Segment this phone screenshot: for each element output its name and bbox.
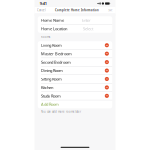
staticText: Select [83, 26, 93, 31]
staticText: 9:41 [40, 1, 47, 6]
button[interactable]: Cancel [37, 8, 46, 12]
button[interactable]: Master Bedroom [38, 50, 112, 58]
staticText: Rooms [41, 35, 50, 39]
button[interactable]: Save [108, 8, 113, 12]
button[interactable]: Second Bedroom [38, 58, 112, 66]
staticText: Living Room [41, 43, 62, 48]
staticText: Cancel [37, 8, 46, 12]
staticText: Home Location [41, 26, 67, 31]
staticText: Dining Room [41, 68, 63, 73]
staticText: Master Bedroom [41, 51, 72, 56]
staticText: Study Room [41, 93, 61, 98]
button[interactable]: Living Room [38, 41, 112, 50]
staticText: Sitting Room [41, 76, 62, 82]
staticText: Enter [82, 18, 91, 23]
button[interactable]: Study Room [38, 92, 112, 100]
staticText: Home Name [41, 18, 64, 23]
staticText: Complete Home Information [55, 8, 99, 12]
button[interactable]: Sitting Room [38, 75, 112, 83]
button[interactable]: Kitchen [38, 83, 112, 92]
staticText: Add Room [41, 102, 59, 107]
button[interactable]: Home Location [38, 25, 112, 33]
staticText: Second Bedroom [41, 59, 71, 65]
button[interactable]: Dining Room [38, 66, 112, 75]
button[interactable]: Home Name [38, 16, 112, 25]
staticText: Kitchen [41, 85, 53, 90]
button[interactable]: Add Room [38, 100, 112, 108]
staticText: You can add more rooms later [41, 110, 81, 113]
staticText: Save [108, 8, 113, 12]
